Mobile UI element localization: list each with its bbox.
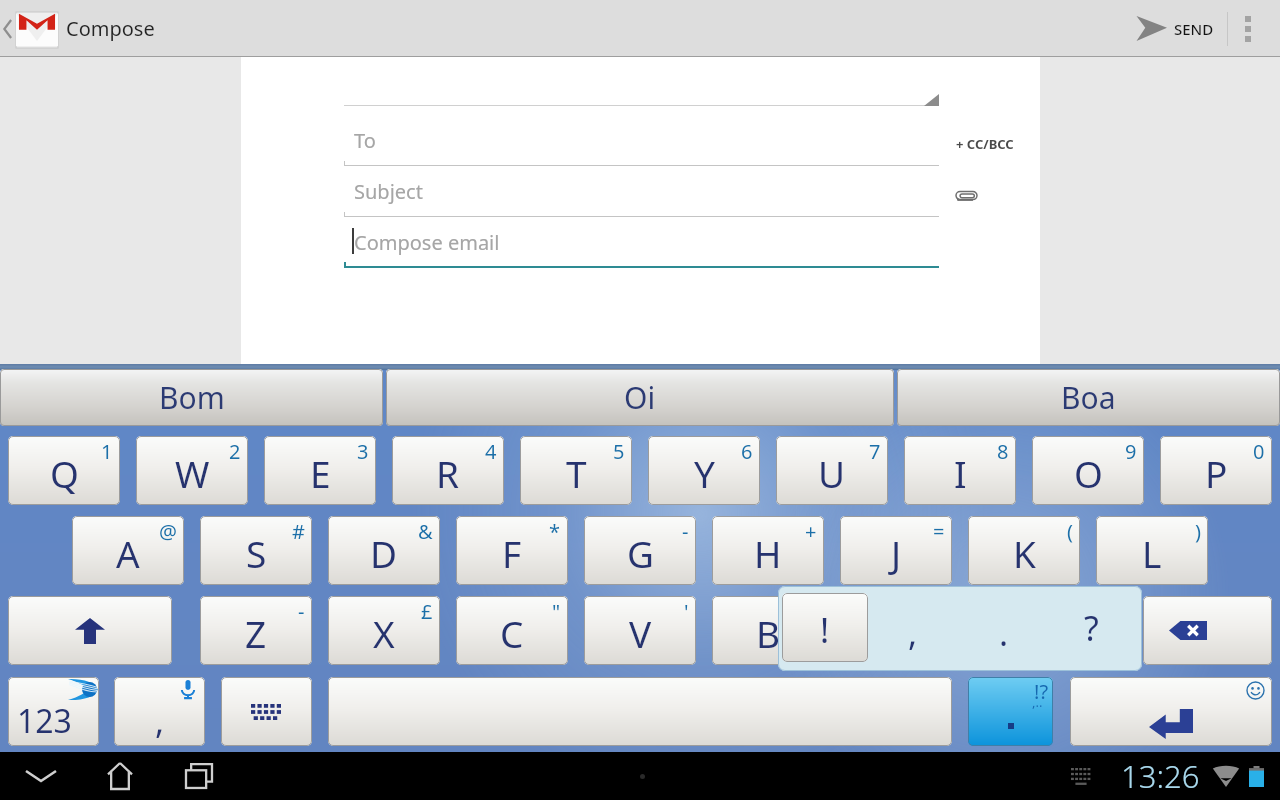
button[interactable]: T: [520, 436, 632, 505]
button[interactable]: I: [904, 436, 1016, 505]
staticText: J: [891, 528, 902, 578]
button[interactable]: !: [782, 593, 868, 662]
button[interactable]: W: [136, 436, 248, 505]
button[interactable]: Y: [648, 436, 760, 505]
staticText: D: [370, 528, 398, 578]
button[interactable]: B: [712, 596, 824, 665]
staticText: Boa: [1061, 377, 1116, 418]
button[interactable]: .: [999, 610, 1009, 656]
button[interactable]: N: [840, 596, 952, 665]
staticText: S: [246, 528, 267, 578]
button[interactable]: Oi: [386, 369, 894, 426]
staticText: W: [175, 448, 210, 498]
staticText: ,..: [1032, 693, 1043, 711]
button[interactable]: F: [456, 516, 568, 585]
button[interactable]: M: [968, 596, 1080, 665]
staticText: (: [1067, 518, 1073, 545]
button[interactable]: K: [968, 516, 1080, 585]
button[interactable]: L: [1096, 516, 1208, 585]
button[interactable]: SEND: [1136, 0, 1214, 57]
staticText: +: [805, 518, 817, 545]
button[interactable]: Back: [19, 752, 63, 800]
staticText: SEND: [1174, 19, 1214, 39]
staticText: F: [502, 528, 522, 578]
button[interactable]: Q: [8, 436, 120, 505]
button[interactable]: Hide keyboard: [1064, 752, 1098, 800]
staticText: 9: [1125, 438, 1137, 465]
button[interactable]: !?: [968, 677, 1053, 746]
staticText: !: [820, 607, 830, 653]
staticText: Compose: [66, 15, 155, 42]
staticText: Compose email: [354, 229, 500, 256]
staticText: E: [310, 448, 331, 498]
staticText: !?: [1034, 678, 1049, 705]
button[interactable]: H: [712, 516, 824, 585]
staticText: #: [292, 518, 305, 545]
staticText: 4: [485, 438, 497, 465]
button[interactable]: D: [328, 516, 440, 585]
staticText: B: [756, 608, 781, 658]
button[interactable]: [8, 596, 172, 665]
button[interactable]: Subject: [344, 166, 939, 217]
staticText: X: [373, 608, 395, 658]
staticText: R: [436, 448, 460, 498]
staticText: *: [549, 518, 561, 545]
staticText: 6: [741, 438, 753, 465]
button[interactable]: C: [456, 596, 568, 665]
button[interactable]: ?: [1084, 605, 1099, 651]
button[interactable]: + CC/BCC: [956, 128, 1026, 160]
button[interactable]: Compose email: [344, 217, 939, 268]
button[interactable]: A: [72, 516, 184, 585]
button[interactable]: Attach file: [946, 180, 986, 212]
staticText: Oi: [624, 377, 656, 418]
staticText: Z: [245, 608, 267, 658]
staticText: Bom: [159, 377, 225, 418]
button[interactable]: Recent apps: [177, 752, 221, 800]
button[interactable]: P: [1160, 436, 1272, 505]
button[interactable]: X: [328, 596, 440, 665]
button[interactable]: ,: [114, 677, 205, 746]
button[interactable]: R: [392, 436, 504, 505]
staticText: L: [1142, 528, 1162, 578]
button[interactable]: Navigate up: [0, 0, 59, 57]
button[interactable]: [328, 677, 952, 746]
staticText: H: [754, 528, 782, 578]
button[interactable]: [1143, 596, 1272, 665]
staticText: I: [954, 448, 967, 498]
button[interactable]: S: [200, 516, 312, 585]
button[interactable]: Home: [98, 752, 142, 800]
staticText: -: [298, 598, 305, 625]
staticText: Y: [694, 448, 715, 498]
button[interactable]: Bom: [0, 369, 383, 426]
staticText: To: [354, 127, 376, 154]
staticText: V: [629, 608, 652, 658]
staticText: £: [421, 598, 433, 625]
staticText: O: [1074, 448, 1103, 498]
staticText: &: [418, 518, 433, 545]
button[interactable]: [1070, 677, 1272, 746]
button[interactable]: G: [584, 516, 696, 585]
button[interactable]: More options: [1228, 0, 1268, 57]
staticText: 0: [1253, 438, 1265, 465]
staticText: 2: [229, 438, 241, 465]
staticText: 123: [17, 699, 72, 743]
button[interactable]: O: [1032, 436, 1144, 505]
button[interactable]: J: [840, 516, 952, 585]
button[interactable]: [221, 677, 312, 746]
staticText: U: [818, 448, 846, 498]
staticText: ,: [155, 698, 165, 744]
staticText: N: [882, 608, 911, 658]
button[interactable]: U: [776, 436, 888, 505]
button[interactable]: E: [264, 436, 376, 505]
button[interactable]: V: [584, 596, 696, 665]
staticText: =: [933, 518, 945, 545]
button[interactable]: 123: [8, 677, 99, 746]
button[interactable]: ,: [908, 610, 918, 656]
staticText: P: [1205, 448, 1228, 498]
button[interactable]: Z: [200, 596, 312, 665]
button[interactable]: To: [344, 115, 939, 166]
button[interactable]: Boa: [897, 369, 1280, 426]
staticText: 1: [101, 438, 113, 465]
